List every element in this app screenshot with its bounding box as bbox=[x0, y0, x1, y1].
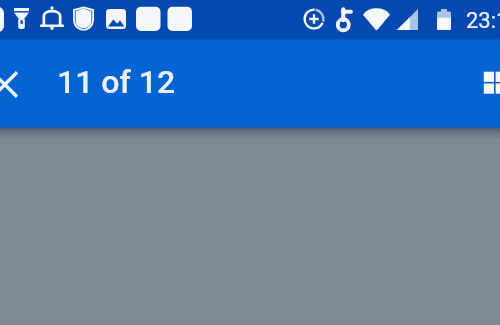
staticText: 11 of 12 bbox=[57, 63, 176, 101]
button[interactable]: Grid view bbox=[478, 61, 500, 101]
button[interactable]: Close bbox=[0, 63, 25, 103]
staticText: 23:1 bbox=[466, 8, 500, 34]
